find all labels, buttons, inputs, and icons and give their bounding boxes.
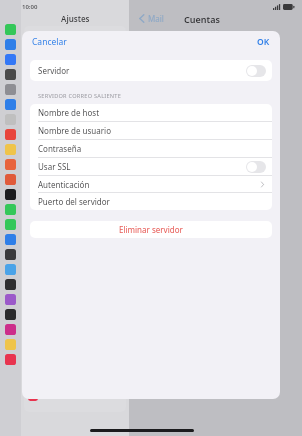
button[interactable]: Eliminar servidor bbox=[30, 221, 272, 238]
button[interactable]: App bbox=[5, 219, 16, 230]
button[interactable]: Activar bbox=[246, 65, 266, 77]
staticText: 10:00 bbox=[22, 3, 38, 11]
staticText: Ajustes bbox=[61, 13, 90, 24]
staticText: Usar SSL bbox=[38, 161, 71, 172]
button[interactable]: App bbox=[5, 99, 16, 110]
staticText: Servidor bbox=[38, 65, 70, 76]
button[interactable]: Puerto del servidor bbox=[30, 193, 272, 210]
button[interactable]: App bbox=[5, 294, 16, 305]
button[interactable]: OK bbox=[247, 32, 280, 52]
button[interactable]: App bbox=[5, 69, 16, 80]
button[interactable]: App bbox=[5, 234, 16, 245]
button[interactable]: App bbox=[5, 279, 16, 290]
button[interactable]: App bbox=[5, 309, 16, 320]
button[interactable]: Servidor bbox=[30, 60, 272, 81]
staticText: OK bbox=[257, 36, 270, 48]
staticText: Autenticación bbox=[38, 179, 90, 190]
staticText: Nombre de usuario bbox=[38, 125, 111, 136]
button[interactable]: App bbox=[5, 174, 16, 185]
button[interactable]: App bbox=[5, 189, 16, 200]
staticText: Mail bbox=[148, 13, 164, 24]
staticText: Cancelar bbox=[32, 36, 67, 48]
button[interactable]: Autenticación bbox=[30, 176, 272, 192]
button[interactable]: App bbox=[5, 204, 16, 215]
button[interactable]: Cancelar bbox=[22, 32, 77, 52]
staticText: Música bbox=[42, 391, 66, 401]
button[interactable]: App bbox=[5, 24, 16, 35]
button[interactable]: Nombre de usuario bbox=[30, 122, 272, 139]
button[interactable]: App bbox=[5, 324, 16, 335]
button[interactable]: Usar SSL bbox=[30, 158, 272, 175]
staticText: Cuentas bbox=[184, 13, 220, 25]
button[interactable]: Contraseña bbox=[30, 140, 272, 157]
button[interactable]: App bbox=[5, 159, 16, 170]
button[interactable]: App bbox=[5, 339, 16, 350]
button[interactable]: App bbox=[5, 54, 16, 65]
button[interactable]: Mail bbox=[129, 11, 170, 26]
button[interactable]: App bbox=[5, 144, 16, 155]
staticText: Eliminar servidor bbox=[119, 224, 183, 235]
button[interactable]: Nombre de host bbox=[30, 104, 272, 121]
button[interactable]: App bbox=[5, 84, 16, 95]
button[interactable]: App bbox=[5, 264, 16, 275]
button[interactable]: Activar bbox=[246, 161, 266, 173]
staticText: Nombre de host bbox=[38, 107, 100, 118]
button[interactable]: App bbox=[5, 39, 16, 50]
staticText: SERVIDOR CORREO SALIENTE bbox=[38, 92, 122, 100]
staticText: Contraseña bbox=[38, 143, 82, 154]
staticText: Puerto del servidor bbox=[38, 196, 110, 207]
button[interactable]: App bbox=[5, 354, 16, 365]
button[interactable]: App bbox=[5, 249, 16, 260]
button[interactable]: App bbox=[5, 129, 16, 140]
